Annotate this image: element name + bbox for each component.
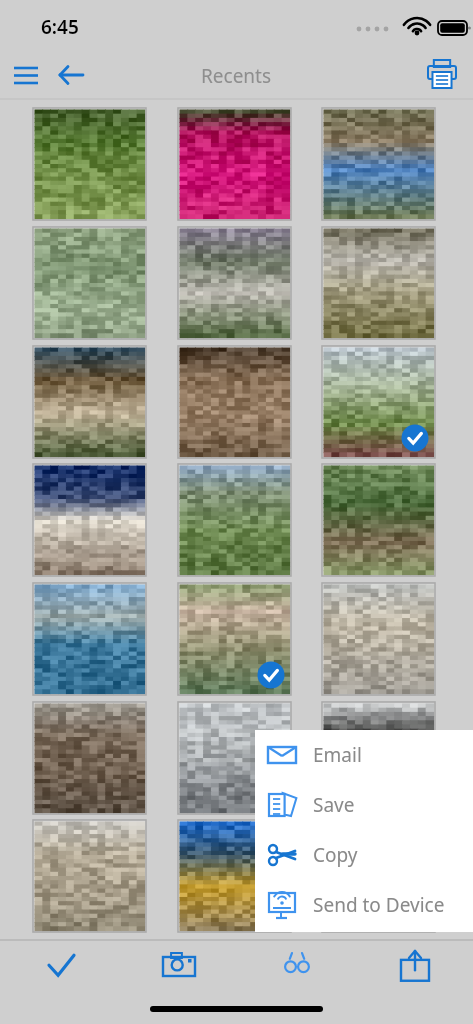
- button[interactable]: Menu: [10, 58, 42, 92]
- button[interactable]: Save: [255, 780, 473, 830]
- staticText: Send to Device: [313, 892, 445, 918]
- button[interactable]: Copy: [255, 830, 473, 880]
- button[interactable]: Photo 15: [322, 583, 435, 695]
- button[interactable]: Photo 16: [33, 702, 146, 814]
- button[interactable]: Photo 1: [33, 108, 146, 220]
- button[interactable]: Photo 7: [33, 346, 146, 458]
- button[interactable]: Photo 6: [322, 227, 435, 339]
- button[interactable]: Photo 3: [322, 108, 435, 220]
- button[interactable]: Photo 8: [178, 346, 291, 458]
- button[interactable]: Photo 14: [178, 583, 291, 695]
- staticText: Save: [313, 792, 355, 818]
- button[interactable]: Back: [54, 58, 88, 92]
- button[interactable]: Photo 13: [33, 583, 146, 695]
- button[interactable]: Photo 10: [33, 464, 146, 576]
- button[interactable]: Photo 17: [178, 702, 291, 814]
- staticText: Copy: [313, 842, 358, 868]
- staticText: 6:45: [41, 14, 79, 40]
- button[interactable]: Share: [397, 948, 433, 984]
- button[interactable]: Photo 19: [33, 820, 146, 932]
- button[interactable]: Camera: [161, 948, 197, 984]
- button[interactable]: Photo 2: [178, 108, 291, 220]
- button[interactable]: Photo 21: [322, 820, 435, 932]
- button[interactable]: Photo 18: [322, 702, 435, 814]
- button[interactable]: Photo 20: [178, 820, 291, 932]
- button[interactable]: Print: [425, 57, 459, 93]
- button[interactable]: Photo 11: [178, 464, 291, 576]
- button[interactable]: Preview: [279, 948, 315, 984]
- button[interactable]: Photo 12: [322, 464, 435, 576]
- button[interactable]: Photo 5: [178, 227, 291, 339]
- staticText: Email: [313, 742, 362, 768]
- button[interactable]: Email: [255, 730, 473, 780]
- button[interactable]: Send to Device: [255, 880, 473, 930]
- button[interactable]: Photo 4: [33, 227, 146, 339]
- staticText: Recents: [201, 63, 272, 89]
- button[interactable]: Photo 9: [322, 346, 435, 458]
- button[interactable]: Select: [43, 948, 79, 984]
